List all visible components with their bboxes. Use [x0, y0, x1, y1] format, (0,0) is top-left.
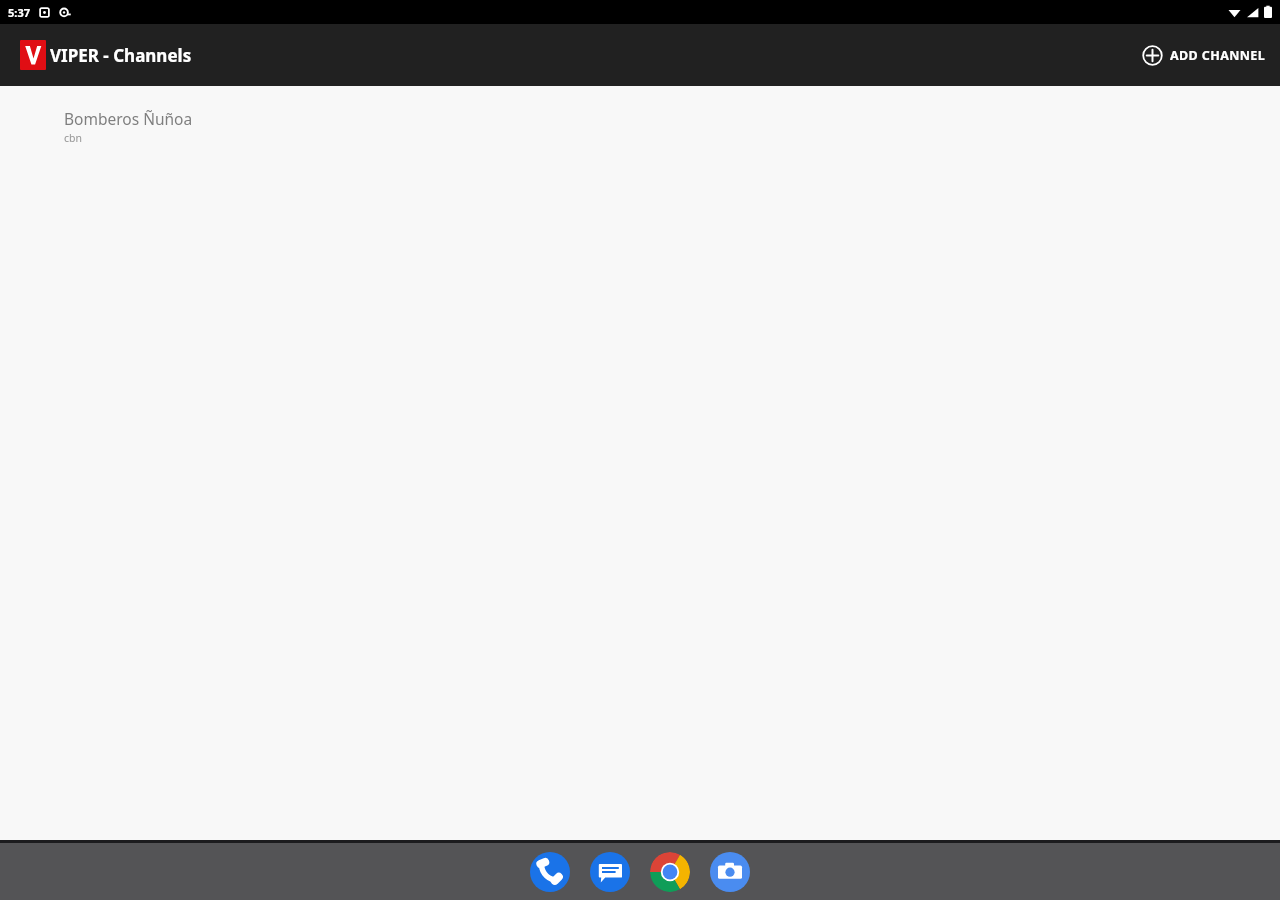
button[interactable]: Bomberos Ñuñoa	[0, 86, 1280, 159]
staticText: cbn	[64, 131, 82, 145]
staticText: ADD CHANNEL	[1170, 47, 1266, 64]
staticText: 5:37	[8, 5, 30, 20]
staticText: VIPER - Channels	[50, 44, 192, 67]
button[interactable]: ADD CHANNEL	[1128, 33, 1280, 78]
button[interactable]: Camera	[710, 852, 750, 892]
button[interactable]: Chrome	[650, 852, 690, 892]
staticText: Bomberos Ñuñoa	[64, 108, 193, 129]
button[interactable]: Phone	[530, 852, 570, 892]
button[interactable]: Messages	[590, 852, 630, 892]
